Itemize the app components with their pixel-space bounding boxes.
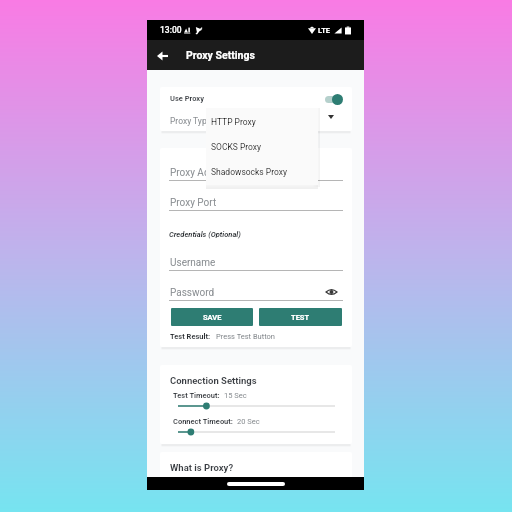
button[interactable]: Password	[169, 287, 343, 305]
staticText: HTTP Proxy	[211, 117, 256, 127]
button[interactable]: Proxy Type:	[160, 110, 352, 131]
button[interactable]: SOCKS Proxy	[206, 133, 318, 158]
button[interactable]: SAVE	[171, 308, 253, 326]
staticText: LTE	[318, 26, 331, 35]
staticText: Password	[170, 287, 215, 299]
staticText: Test Result:	[170, 332, 211, 341]
staticText: Use Proxy	[170, 94, 204, 103]
staticText: Proxy Ad	[170, 167, 210, 179]
button[interactable]: Proxy Ad	[169, 167, 343, 185]
staticText: Press Test Button	[216, 332, 275, 341]
staticText: 15 Sec	[224, 391, 247, 400]
staticText: Connection Settings	[170, 375, 257, 386]
staticText: What is Proxy?	[170, 462, 234, 473]
staticText: Proxy Type:	[170, 116, 214, 126]
button[interactable]: Proxy Port	[169, 197, 343, 215]
staticText: Shadowsocks Proxy	[211, 167, 288, 177]
staticText: Test Timeout:	[173, 391, 220, 400]
button[interactable]: Use Proxy	[160, 87, 352, 110]
button[interactable]: Username	[169, 257, 343, 275]
button[interactable]: Test Timeout:	[178, 400, 335, 412]
button[interactable]: Shadowsocks Proxy	[206, 158, 318, 183]
button[interactable]: Connect Timeout:	[178, 426, 335, 438]
button[interactable]: HTTP Proxy	[206, 108, 318, 133]
button[interactable]: TEST	[259, 308, 342, 326]
staticText: SAVE	[203, 313, 222, 322]
staticText: Credentials (Optional)	[169, 230, 241, 239]
staticText: Connect Timeout:	[173, 417, 233, 426]
staticText: 20 Sec	[237, 417, 260, 426]
button[interactable]: Back	[151, 44, 174, 67]
staticText: TEST	[291, 313, 310, 322]
staticText: Proxy Settings	[186, 49, 255, 61]
staticText: 13:00	[160, 25, 182, 35]
staticText: Proxy Port	[170, 197, 217, 209]
staticText: SOCKS Proxy	[211, 142, 262, 152]
staticText: Username	[170, 257, 216, 269]
